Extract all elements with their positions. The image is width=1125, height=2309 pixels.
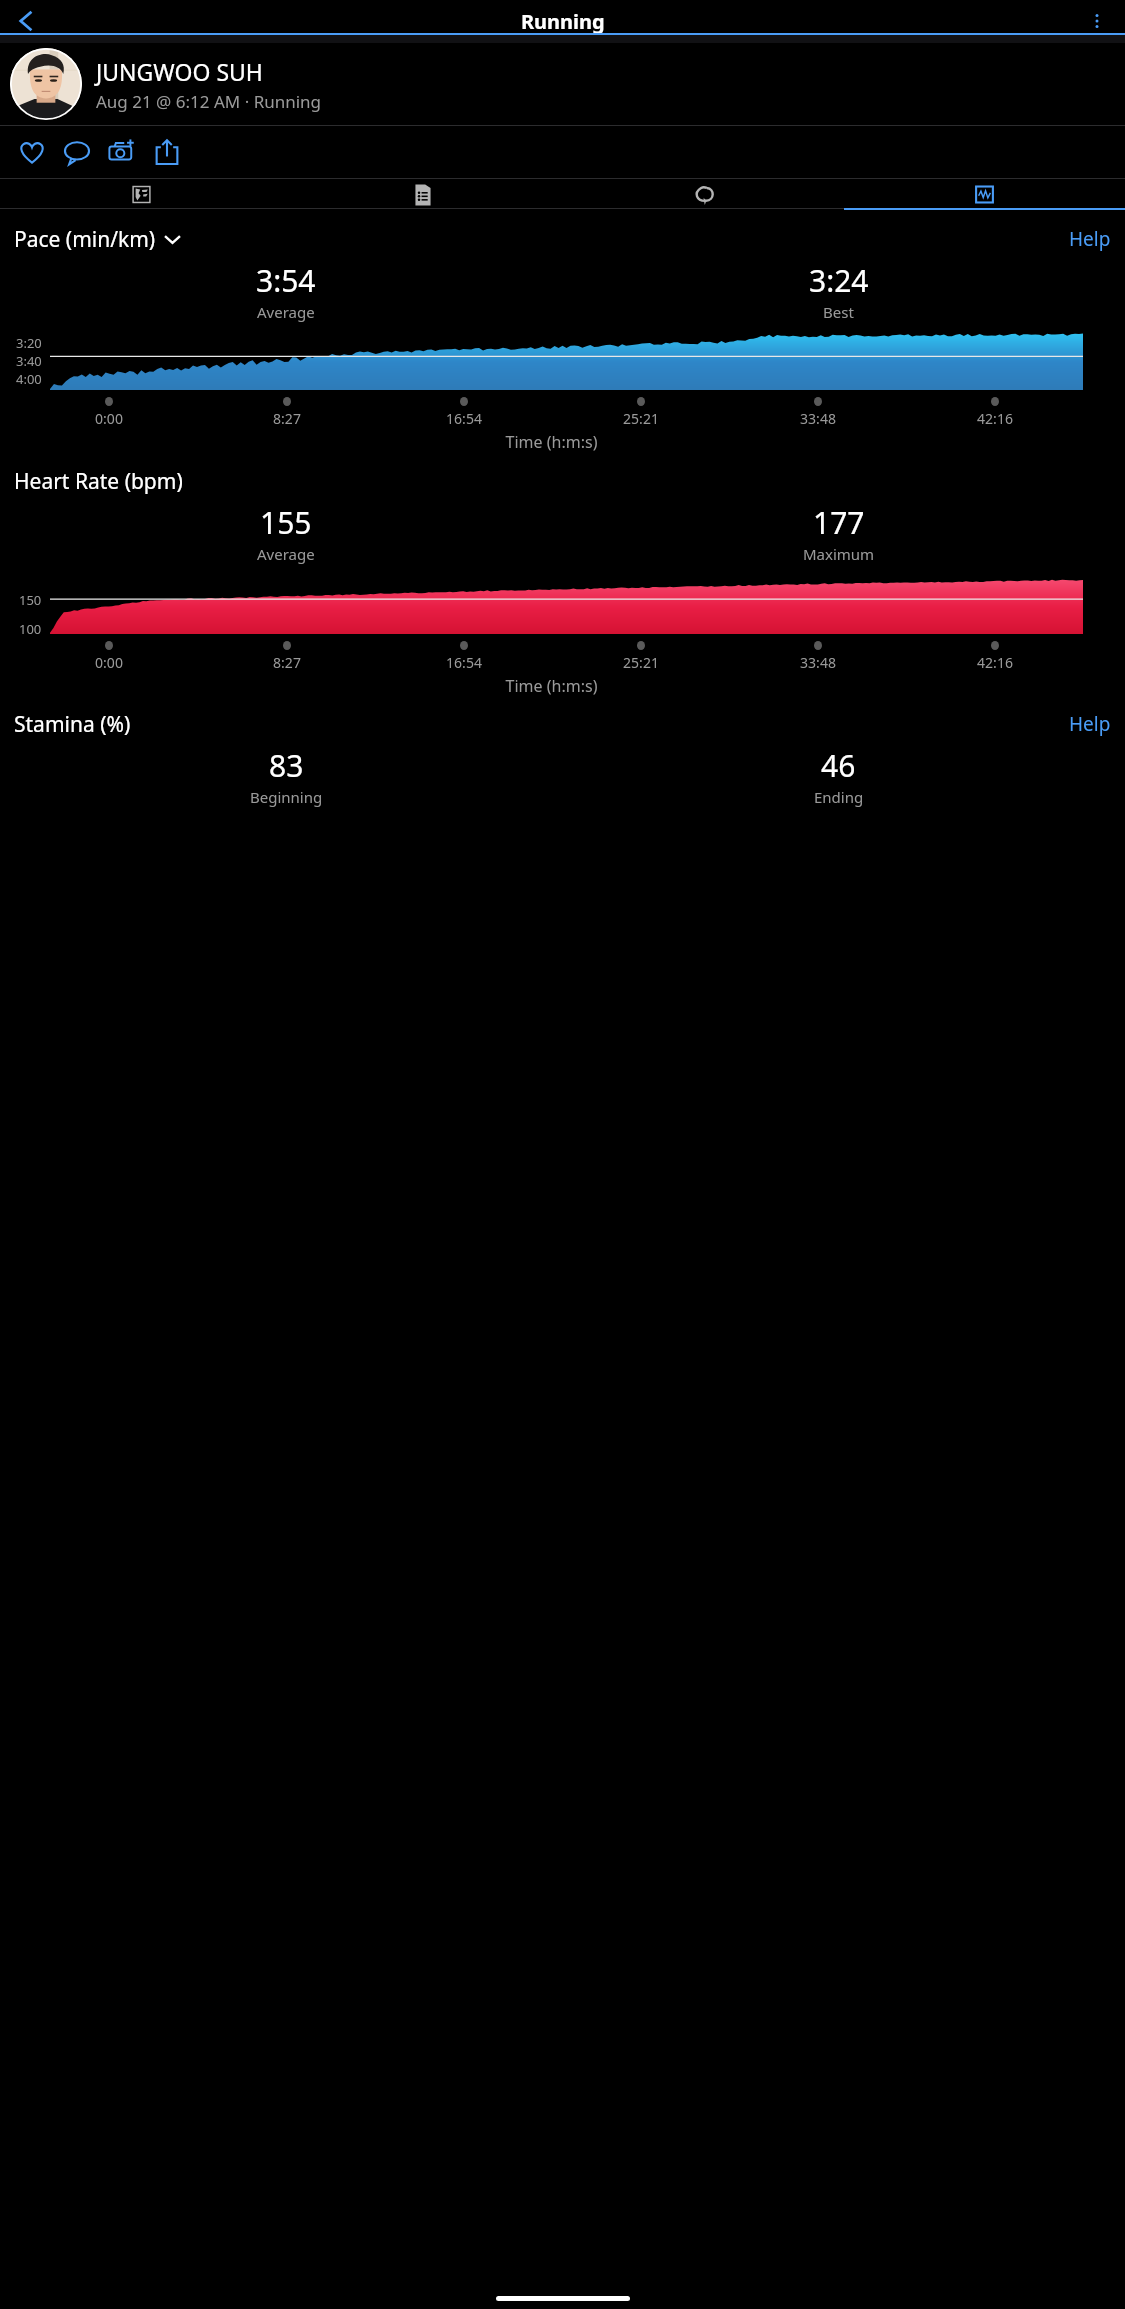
button[interactable]: Pace (min/km) (14, 225, 180, 254)
staticText: 3:40 (16, 352, 42, 370)
staticText: Beginning (250, 787, 323, 807)
staticText: 16:54 (446, 409, 482, 428)
staticText: Stamina (%) (14, 710, 131, 739)
button[interactable]: Add photo (99, 126, 144, 178)
staticText: Heart Rate (bpm) (14, 467, 183, 496)
staticText: 177 (813, 502, 865, 543)
button[interactable]: Comment (54, 126, 99, 178)
staticText: Maximum (803, 544, 875, 564)
staticText: 25:21 (623, 653, 659, 672)
staticText: 42:16 (977, 409, 1013, 428)
staticText: 4:00 (16, 370, 42, 388)
button[interactable]: Like (9, 126, 54, 178)
staticText: Best (823, 302, 854, 322)
staticText: 8:27 (273, 409, 301, 428)
staticText: 16:54 (446, 653, 482, 672)
staticText: Average (257, 302, 315, 322)
button[interactable]: Details (282, 179, 563, 210)
staticText: 0:00 (95, 653, 123, 672)
staticText: 150 (19, 591, 42, 609)
button[interactable]: Help (1069, 711, 1111, 737)
button[interactable]: More options (1075, 8, 1119, 33)
button[interactable]: Stamina (%) (14, 710, 131, 739)
staticText: 42:16 (977, 653, 1013, 672)
staticText: 100 (19, 620, 42, 638)
button[interactable]: Charts (844, 179, 1125, 210)
staticText: Aug 21 @ 6:12 AM · Running (96, 90, 322, 113)
staticText: 46 (821, 745, 856, 786)
staticText: Time (h:m:s) (0, 675, 1103, 697)
staticText: 3:20 (16, 334, 42, 352)
button[interactable]: Help (1069, 226, 1111, 252)
staticText: 3:24 (809, 260, 869, 301)
staticText: Running (521, 8, 605, 33)
staticText: 155 (260, 502, 312, 543)
staticText: 25:21 (623, 409, 659, 428)
staticText: Help (1069, 226, 1111, 252)
staticText: Time (h:m:s) (0, 431, 1103, 453)
staticText: Help (1069, 711, 1111, 737)
staticText: 8:27 (273, 653, 301, 672)
staticText: Pace (min/km) (14, 225, 156, 254)
button[interactable]: Map (0, 179, 282, 210)
button[interactable]: JUNGWOO SUH (0, 43, 1125, 125)
staticText: 33:48 (800, 409, 836, 428)
staticText: JUNGWOO SUH (96, 56, 263, 87)
button[interactable]: Back (4, 8, 48, 33)
staticText: 33:48 (800, 653, 836, 672)
button[interactable]: Share (144, 126, 189, 178)
button[interactable]: Heart Rate (bpm) (14, 467, 183, 496)
staticText: 3:54 (256, 260, 316, 301)
staticText: 83 (269, 745, 304, 786)
staticText: Ending (814, 787, 864, 807)
staticText: 0:00 (95, 409, 123, 428)
button[interactable]: Laps (563, 179, 844, 210)
staticText: Average (257, 544, 315, 564)
